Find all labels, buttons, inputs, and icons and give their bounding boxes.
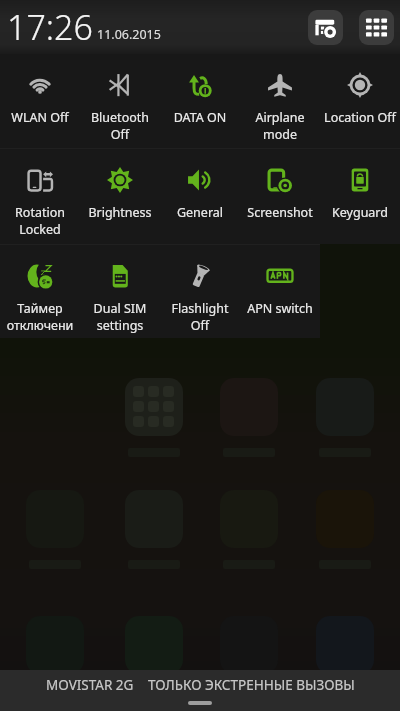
button[interactable]: WLAN Off — [0, 54, 80, 148]
staticText: DATA ON — [160, 109, 240, 126]
staticText: Dual SIM settings — [80, 300, 160, 333]
button[interactable]: Таймер отключени — [0, 245, 80, 338]
staticText: Таймер отключени — [0, 300, 80, 333]
staticText: Screenshot — [240, 204, 320, 221]
staticText: WLAN Off — [0, 109, 80, 126]
button[interactable]: General — [160, 149, 240, 244]
button[interactable]: DATA ON — [160, 54, 240, 148]
button[interactable]: All apps — [359, 10, 394, 45]
staticText: APN switch — [240, 300, 320, 317]
staticText: Flashlight Off — [160, 300, 240, 333]
button[interactable]: Dual SIM settings — [80, 245, 160, 338]
staticText: Brightness — [80, 204, 160, 221]
staticText: Airplane mode — [240, 109, 320, 142]
staticText: Rotation Locked — [0, 204, 80, 237]
staticText: 11.06.2015 — [97, 26, 161, 43]
button[interactable]: Bluetooth Off — [80, 54, 160, 148]
staticText: General — [160, 204, 240, 221]
button[interactable]: Keyguard — [320, 149, 400, 244]
staticText: ТОЛЬКО ЭКСТРЕННЫЕ ВЫЗОВЫ — [148, 676, 355, 694]
staticText: 17:26 — [7, 4, 93, 50]
button[interactable]: Edit quick settings — [308, 10, 343, 45]
staticText: Location Off — [320, 109, 400, 126]
button[interactable]: Location Off — [320, 54, 400, 148]
button[interactable]: Airplane mode — [240, 54, 320, 148]
button[interactable]: Screenshot — [240, 149, 320, 244]
button[interactable]: Rotation Locked — [0, 149, 80, 244]
button[interactable]: APN switch — [240, 245, 320, 338]
button[interactable]: Brightness — [80, 149, 160, 244]
staticText: Bluetooth Off — [80, 109, 160, 142]
staticText: Keyguard — [320, 204, 400, 221]
button[interactable]: Flashlight Off — [160, 245, 240, 338]
staticText: MOVISTAR 2G — [46, 676, 134, 694]
